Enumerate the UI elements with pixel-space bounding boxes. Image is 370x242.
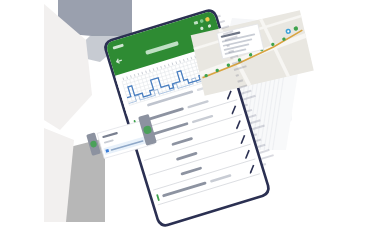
button[interactable]: Field data collection app promo illustra…	[0, 0, 370, 242]
